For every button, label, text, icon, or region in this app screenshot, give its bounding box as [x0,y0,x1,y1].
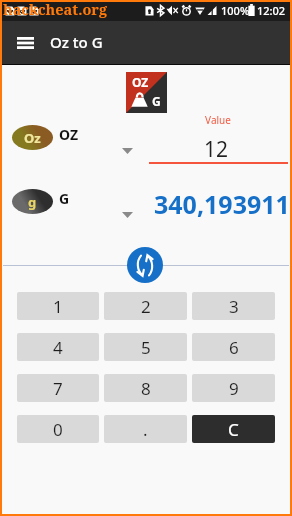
button[interactable]: 2 [104,292,187,320]
staticText: 4 [53,336,63,359]
staticText: 3 [229,295,239,318]
button[interactable]: 5 [104,333,187,361]
staticText: C [228,418,239,441]
staticText: 6 [229,336,239,359]
button[interactable]: 9 [192,374,275,402]
staticText: G [152,93,161,109]
button[interactable]: 0 [17,415,99,443]
button[interactable]: 6 [192,333,275,361]
button[interactable]: 7 [17,374,99,402]
staticText: 7 [53,377,63,400]
staticText: G [59,189,70,208]
button[interactable]: 3 [192,292,275,320]
staticText: 1 [53,295,63,318]
staticText: 9 [229,377,239,400]
staticText: OZ [132,74,149,90]
staticText: Value [149,113,287,127]
button[interactable]: C [192,415,275,443]
staticText: 8 [141,377,151,400]
staticText: OZ [59,125,79,144]
button[interactable]: . [104,415,187,443]
staticText: 340,193911 [154,187,290,221]
staticText: 12 [147,135,285,164]
button[interactable]: 1 [17,292,99,320]
staticText: 5 [141,336,151,359]
button[interactable]: Open navigation menu [11,26,39,60]
staticText: . [143,418,148,441]
staticText: Oz [24,129,41,147]
staticText: g [28,193,37,211]
staticText: 12:02 [257,3,286,18]
staticText: 100% [221,3,250,18]
button[interactable]: 8 [104,374,187,402]
button[interactable]: Swap units [127,247,163,283]
staticText: hackcheat.org [3,0,108,18]
button[interactable]: 4 [17,333,99,361]
staticText: 0 [53,418,63,441]
staticText: Oz to G [50,32,103,52]
staticText: 2 [141,295,151,318]
